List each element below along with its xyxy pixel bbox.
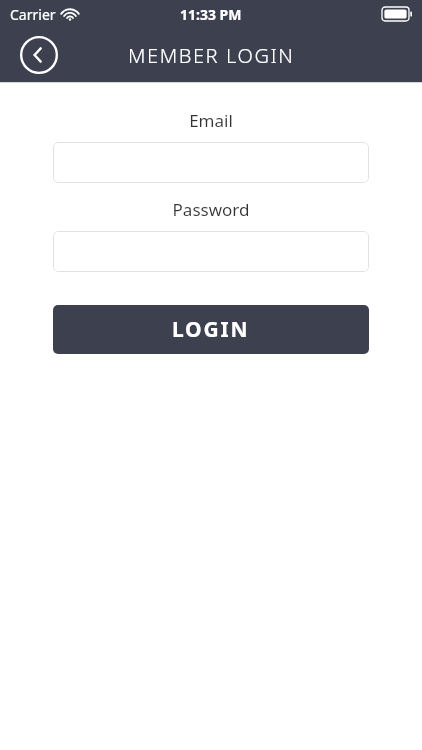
staticText: LOGIN (172, 315, 250, 344)
staticText: Password (0, 198, 422, 221)
button[interactable]: Back (14, 30, 64, 80)
button[interactable]: Text input (53, 231, 369, 272)
button[interactable]: LOGIN (53, 305, 369, 354)
staticText: MEMBER LOGIN (128, 42, 295, 69)
staticText: Carrier (10, 5, 56, 24)
button[interactable]: Text input (53, 142, 369, 183)
staticText: 11:33 PM (180, 5, 242, 24)
staticText: Email (0, 109, 422, 132)
